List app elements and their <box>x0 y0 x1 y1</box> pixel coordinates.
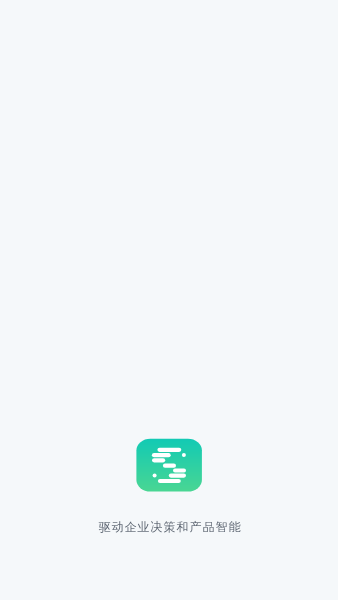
staticText: 驱动企业决策和产品智能 <box>98 519 241 534</box>
other: App logo <box>136 439 202 492</box>
